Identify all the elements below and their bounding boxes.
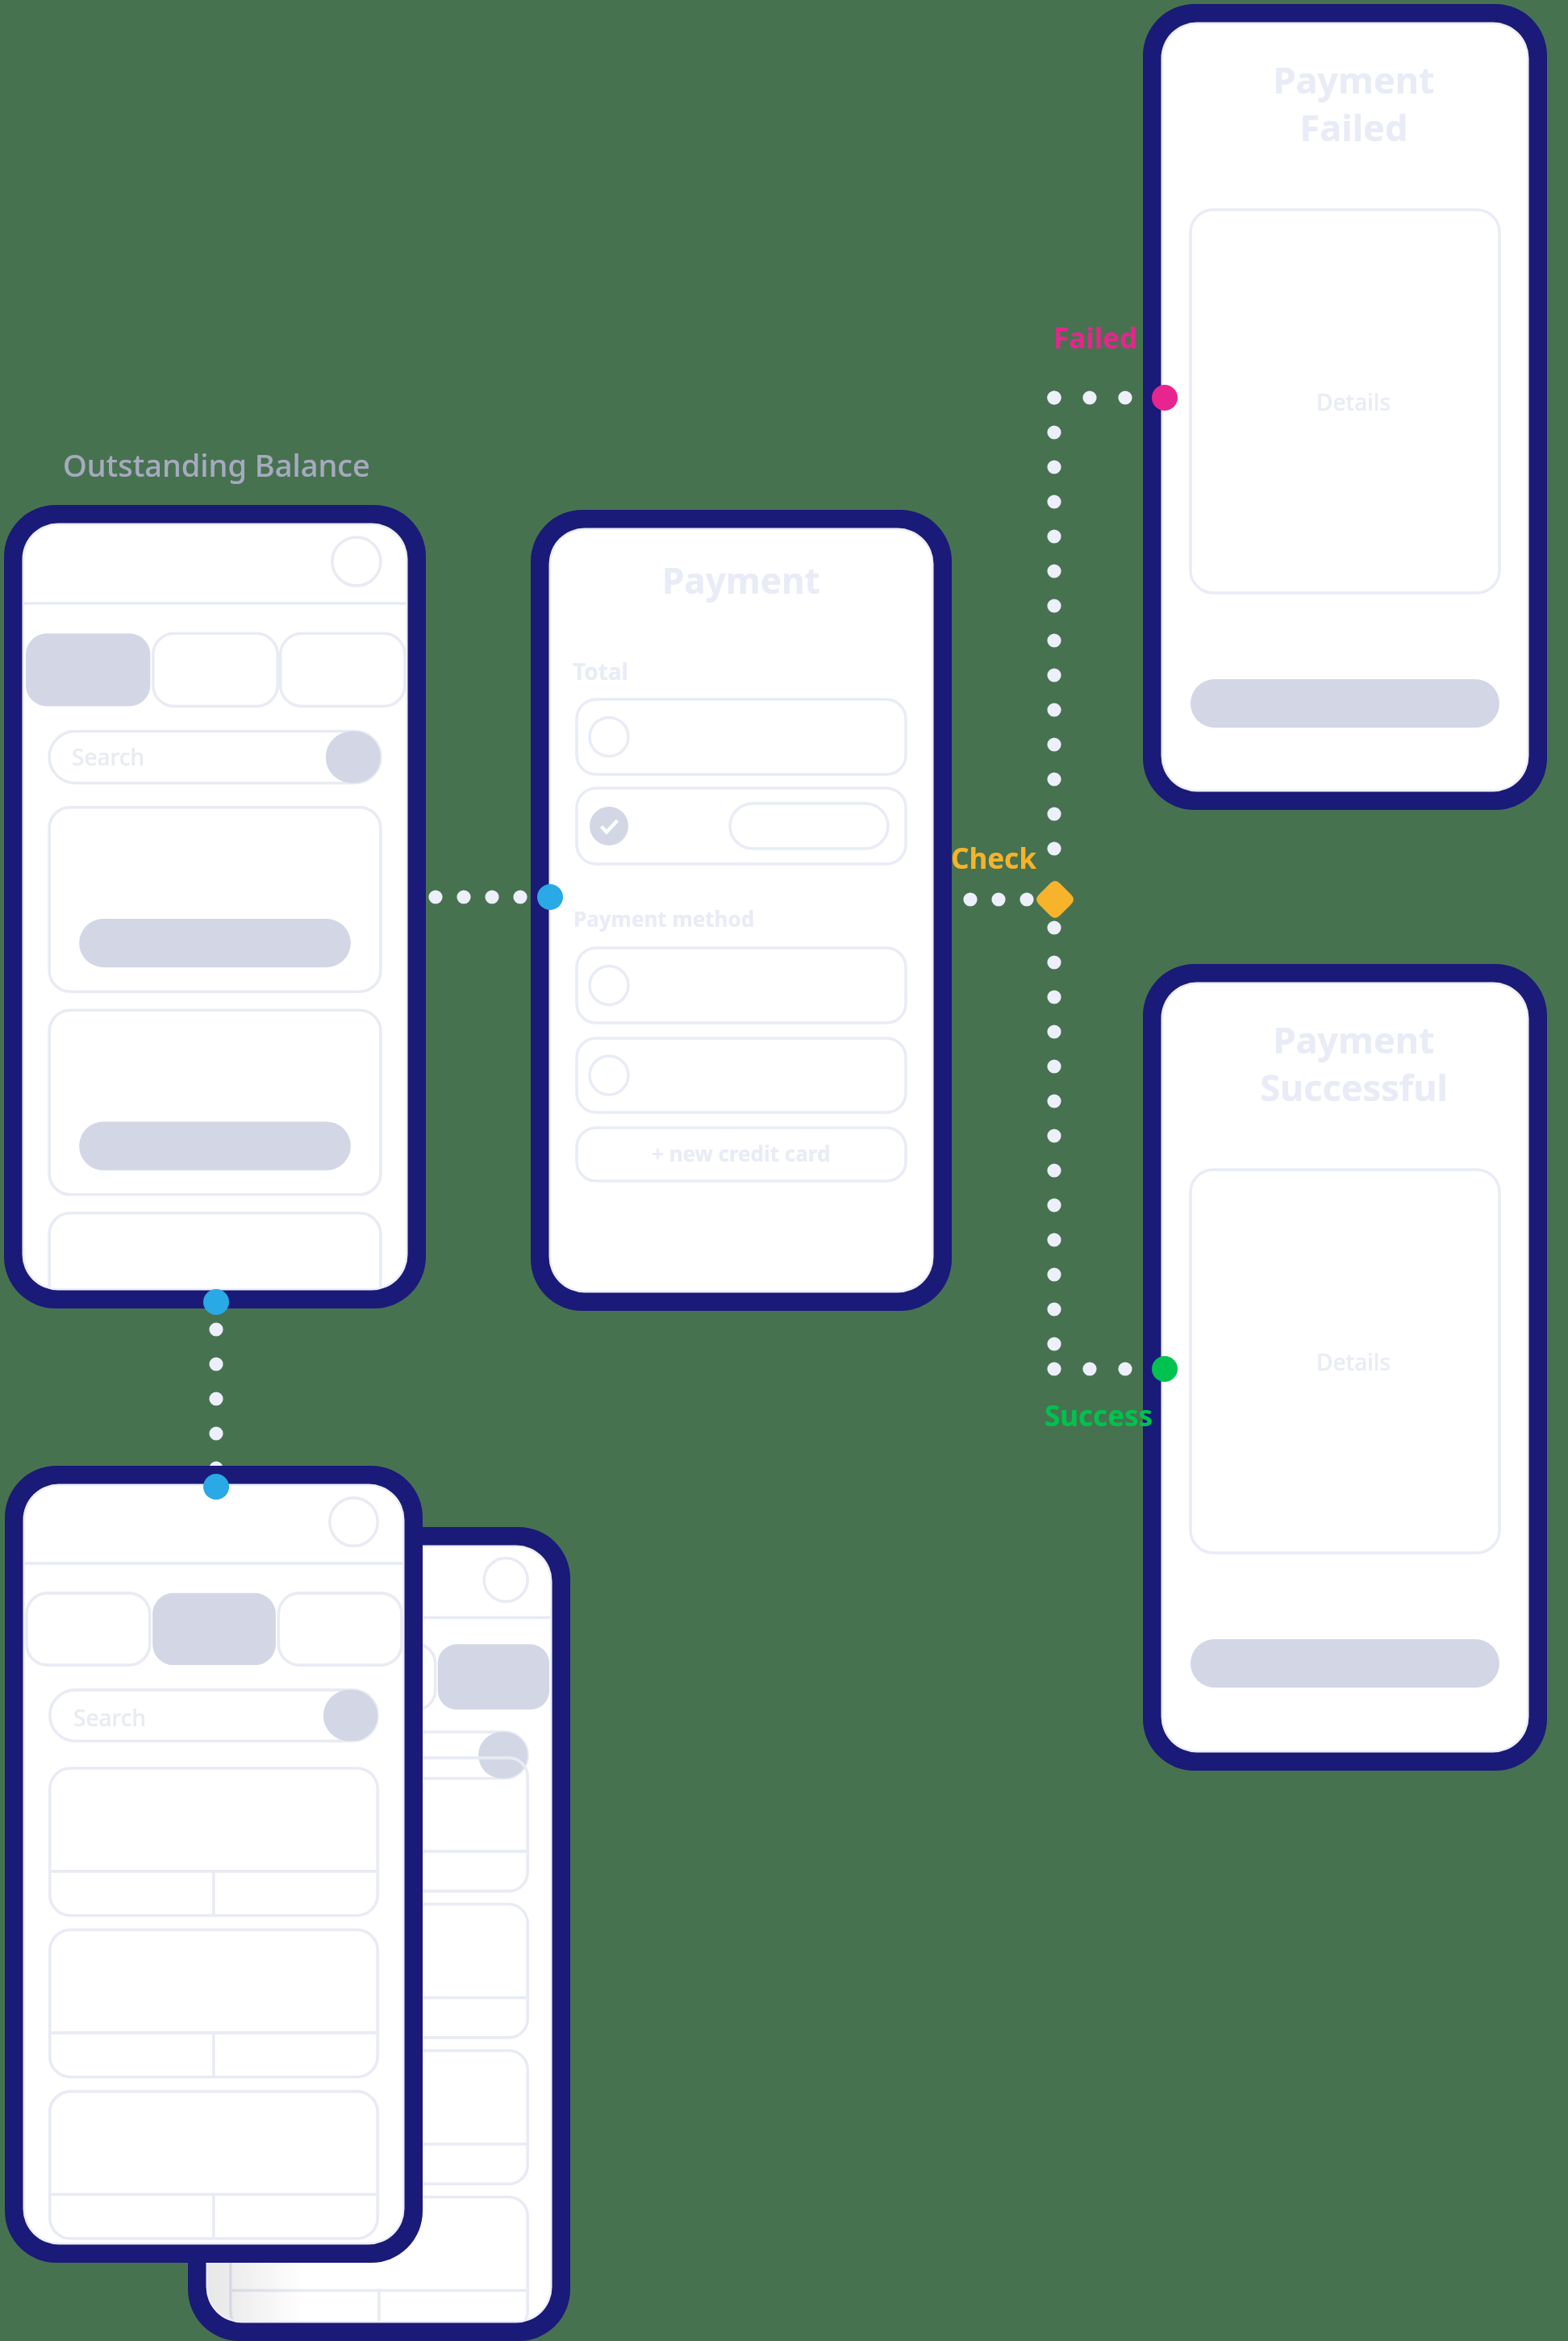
staticText: Outstanding Balance	[63, 444, 370, 486]
button[interactable]: Payment method 1	[577, 946, 906, 1021]
staticText: Success	[1045, 1396, 1153, 1435]
button[interactable]: Balance item 3	[49, 1210, 380, 1308]
button[interactable]: Search	[50, 1692, 382, 1743]
button[interactable]: Tab 1	[24, 625, 150, 698]
staticText: Payment	[662, 556, 820, 604]
button[interactable]: Payment method 2	[577, 1037, 906, 1111]
button[interactable]: Profile	[348, 1498, 397, 1546]
staticText: Check	[951, 839, 1036, 878]
staticText: Details	[1316, 386, 1391, 417]
staticText: Details	[1316, 1346, 1391, 1377]
button[interactable]: Tab 3	[277, 1586, 402, 1659]
button[interactable]: Add new credit card	[577, 1126, 906, 1179]
button[interactable]: Balance item 3	[50, 2097, 381, 2245]
staticText: Payment Failed	[1273, 55, 1435, 152]
staticText: + new credit card	[652, 1139, 831, 1167]
button[interactable]: Tab 2	[151, 1586, 277, 1659]
button[interactable]: Done	[1190, 1638, 1517, 1686]
button[interactable]: Success branch	[1152, 1356, 1179, 1383]
button[interactable]: Profile	[352, 537, 401, 586]
staticText: Payment Successful	[1260, 1015, 1448, 1112]
staticText: Total	[573, 656, 628, 686]
staticText: Failed	[1053, 319, 1138, 357]
button[interactable]: Search	[49, 731, 381, 782]
button[interactable]: Tab 1	[25, 1586, 151, 1659]
button[interactable]: Total option 2, selected	[577, 787, 906, 862]
button[interactable]: Balance item 2	[49, 1008, 380, 1191]
button[interactable]: Check payment result	[1035, 879, 1077, 921]
button[interactable]: Tab 2	[150, 625, 276, 698]
button[interactable]: Balance item 2	[50, 1934, 381, 2082]
button[interactable]: Balance item 1	[50, 1771, 381, 1919]
button[interactable]: Balance item 1	[49, 805, 380, 989]
button[interactable]: Total option 1	[577, 698, 906, 773]
staticText: Search	[73, 1702, 147, 1733]
button[interactable]: Success details	[1190, 1168, 1517, 1551]
button[interactable]: Failed branch	[1152, 385, 1179, 412]
staticText: Payment method	[573, 904, 755, 933]
staticText: Search	[72, 741, 145, 772]
button[interactable]: Tab 3	[276, 625, 402, 698]
button[interactable]: Try again	[1190, 678, 1517, 726]
button[interactable]: Failure details	[1190, 208, 1517, 591]
